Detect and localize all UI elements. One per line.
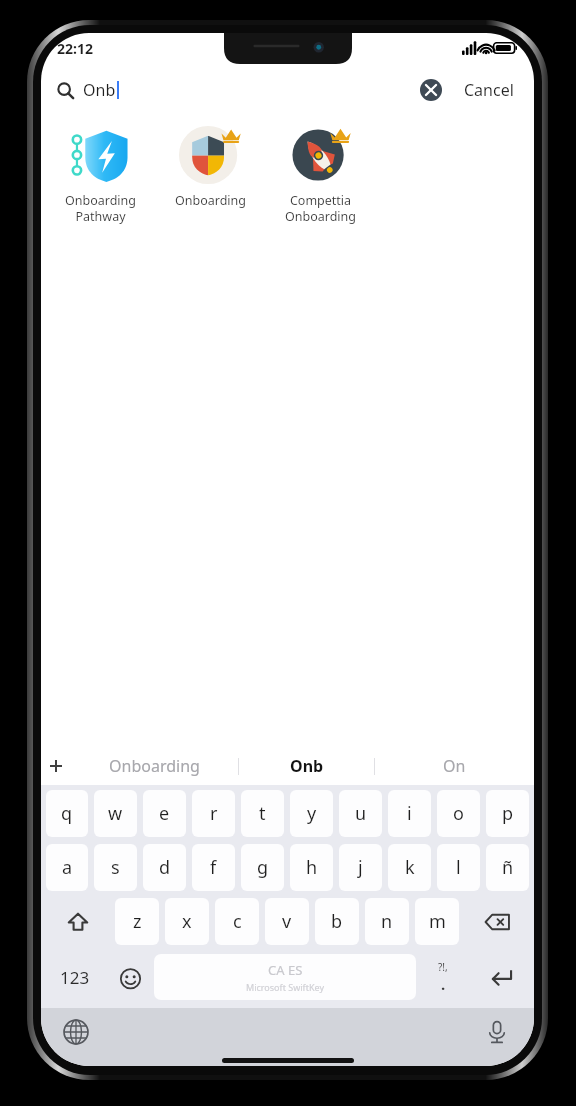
button[interactable]: Onboarding	[71, 747, 238, 785]
staticText: ñ	[502, 855, 514, 880]
button[interactable]: c	[215, 898, 259, 945]
button[interactable]: n	[365, 898, 409, 945]
button[interactable]: ñ	[486, 844, 529, 891]
button[interactable]: o	[437, 790, 480, 837]
button[interactable]: g	[241, 844, 284, 891]
staticText: s	[111, 855, 120, 880]
staticText: e	[159, 801, 170, 826]
staticText: n	[381, 909, 393, 934]
button[interactable]: m	[415, 898, 459, 945]
staticText: i	[407, 801, 412, 826]
staticText: CA ES	[268, 961, 303, 979]
staticText: Microsoft SwiftKey	[246, 981, 324, 993]
staticText: d	[159, 855, 171, 880]
staticText: Onb	[290, 755, 324, 777]
staticText: u	[355, 801, 367, 826]
staticText: c	[233, 909, 242, 934]
button[interactable]: Cancel	[454, 73, 524, 107]
staticText: b	[331, 909, 343, 934]
staticText: z	[133, 909, 142, 934]
staticText: w	[108, 801, 123, 826]
button[interactable]: f	[192, 844, 235, 891]
button[interactable]: Enter	[469, 952, 532, 1002]
button[interactable]: l	[437, 844, 480, 891]
button[interactable]: k	[388, 844, 431, 891]
button[interactable]: w	[94, 790, 137, 837]
staticText: Onboarding	[109, 755, 200, 777]
button[interactable]: e	[143, 790, 186, 837]
staticText: m	[429, 909, 446, 934]
staticText: Onboarding	[175, 192, 246, 209]
staticText: ?!,	[438, 960, 448, 974]
staticText: j	[358, 855, 363, 880]
staticText: t	[259, 801, 266, 826]
button[interactable]: Compettia Onboarding	[265, 119, 375, 224]
button[interactable]: Space	[154, 954, 416, 1000]
staticText: Onboarding Pathway	[65, 192, 136, 224]
button[interactable]: d	[143, 844, 186, 891]
staticText: On	[443, 755, 466, 777]
staticText: k	[405, 855, 415, 880]
staticText: 123	[60, 966, 90, 989]
staticText: h	[306, 855, 318, 880]
button[interactable]: t	[241, 790, 284, 837]
button[interactable]: p	[486, 790, 529, 837]
staticText: x	[182, 909, 192, 934]
staticText: o	[453, 801, 464, 826]
staticText: Compettia Onboarding	[285, 192, 356, 224]
button[interactable]: a	[46, 844, 88, 891]
staticText: v	[282, 909, 292, 934]
button[interactable]: Backspace	[462, 898, 532, 945]
staticText: l	[456, 855, 461, 880]
button[interactable]: h	[290, 844, 333, 891]
staticText: Cancel	[464, 79, 514, 101]
button[interactable]: s	[94, 844, 137, 891]
button[interactable]: ?!,	[416, 952, 469, 1002]
button[interactable]: u	[339, 790, 382, 837]
staticText: q	[61, 801, 73, 826]
button[interactable]: Shift	[43, 898, 112, 945]
button[interactable]: Clear search	[420, 79, 442, 101]
staticText: .	[441, 974, 446, 994]
button[interactable]: j	[339, 844, 382, 891]
button[interactable]: Onboarding Pathway	[45, 119, 155, 224]
button[interactable]: On	[375, 747, 534, 785]
staticText: g	[257, 855, 269, 880]
button[interactable]: 123	[43, 952, 106, 1002]
staticText: p	[502, 801, 514, 826]
button[interactable]: q	[46, 790, 88, 837]
button[interactable]: x	[165, 898, 209, 945]
button[interactable]: v	[265, 898, 309, 945]
button[interactable]: Voice input	[484, 1019, 510, 1045]
button[interactable]: y	[290, 790, 333, 837]
button[interactable]: z	[115, 898, 159, 945]
button[interactable]: i	[388, 790, 431, 837]
button[interactable]: Onb	[45, 72, 454, 108]
staticText: Onb	[83, 79, 116, 101]
staticText: f	[210, 855, 217, 880]
button[interactable]: Add word	[41, 747, 71, 785]
button[interactable]: Onb	[239, 747, 374, 785]
staticText: a	[62, 855, 73, 880]
button[interactable]: Onboarding	[155, 119, 265, 209]
staticText: 22:12	[57, 39, 93, 58]
button[interactable]: r	[192, 790, 235, 837]
staticText: y	[307, 801, 317, 826]
button[interactable]: Change language	[63, 1019, 89, 1045]
staticText: r	[210, 801, 218, 826]
button[interactable]: b	[315, 898, 359, 945]
button[interactable]: Emoji	[106, 952, 154, 1002]
